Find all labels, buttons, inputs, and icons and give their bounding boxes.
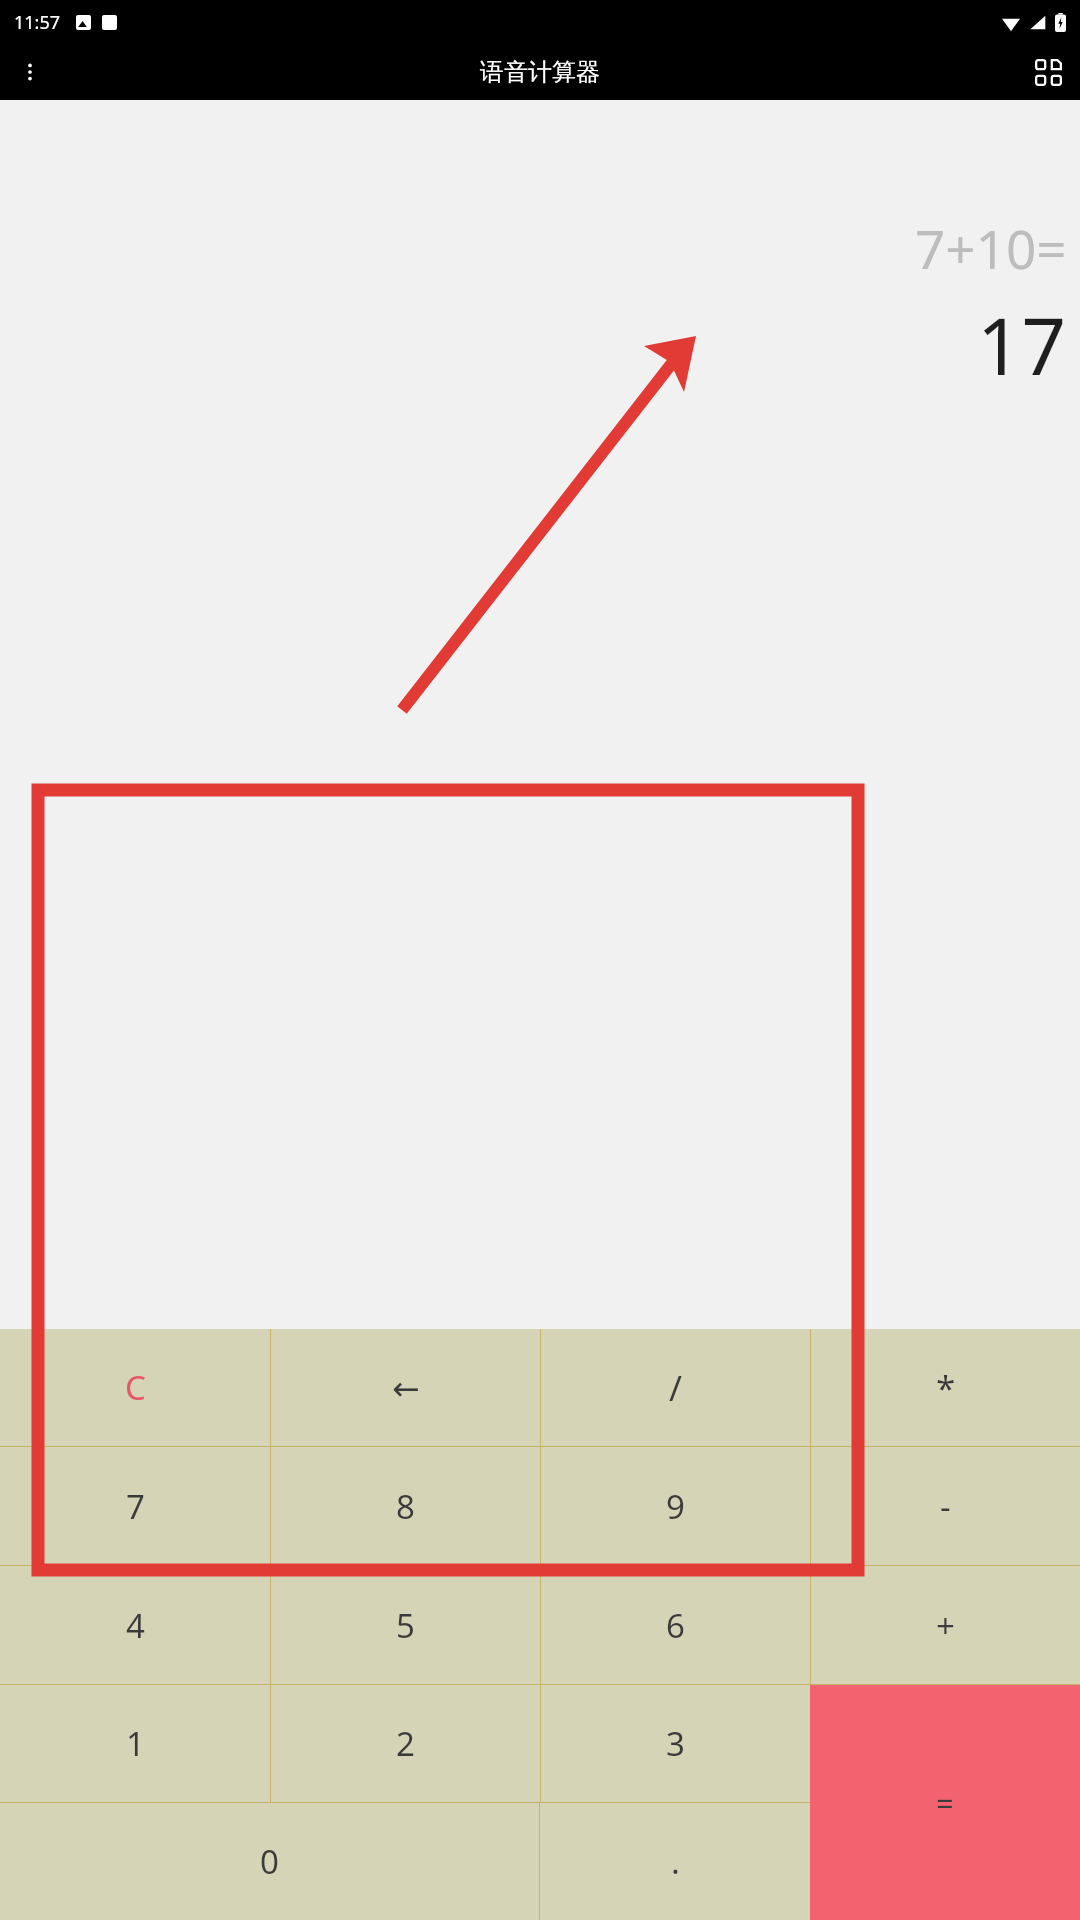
staticText: C [125,1365,146,1410]
button[interactable]: - [811,1447,1080,1565]
staticText: 1 [126,1721,145,1766]
button[interactable]: 1 [0,1685,270,1802]
button[interactable]: / [541,1329,810,1446]
staticText: 9 [666,1484,685,1529]
staticText: . [671,1839,680,1884]
staticText: 17 [977,292,1067,398]
button[interactable]: + [811,1566,1080,1684]
staticText: 6 [666,1603,685,1648]
staticText: 7 [126,1484,145,1529]
button[interactable]: = [810,1685,1080,1920]
button[interactable]: 9 [541,1447,810,1565]
button[interactable]: * [811,1329,1080,1446]
staticText: - [940,1484,951,1529]
button[interactable]: 3 [541,1685,810,1802]
button[interactable]: 4 [0,1566,270,1684]
button[interactable]: 8 [271,1447,540,1565]
staticText: 11:57 [14,10,61,35]
staticText: 5 [396,1603,415,1648]
staticText: / [669,1364,683,1412]
staticText: 3 [666,1721,685,1766]
staticText: * [936,1364,956,1412]
staticText: = [936,1782,954,1824]
staticText: + [936,1603,955,1648]
button[interactable]: 0 [0,1803,539,1920]
button[interactable]: 5 [271,1566,540,1684]
staticText: 2 [396,1721,415,1766]
button[interactable]: C [0,1329,270,1446]
staticText: 8 [396,1484,415,1529]
button[interactable]: Grid view [1022,46,1074,98]
button[interactable]: 6 [541,1566,810,1684]
button[interactable]: 2 [271,1685,540,1802]
staticText: 0 [260,1839,279,1884]
button[interactable]: More options [4,46,56,98]
staticText: 语音计算器 [480,57,600,87]
button[interactable]: 7 [0,1447,270,1565]
staticText: 4 [126,1603,145,1648]
staticText: ← [392,1369,420,1407]
button[interactable]: ← [271,1329,540,1446]
staticText: 7+10= [915,212,1067,284]
